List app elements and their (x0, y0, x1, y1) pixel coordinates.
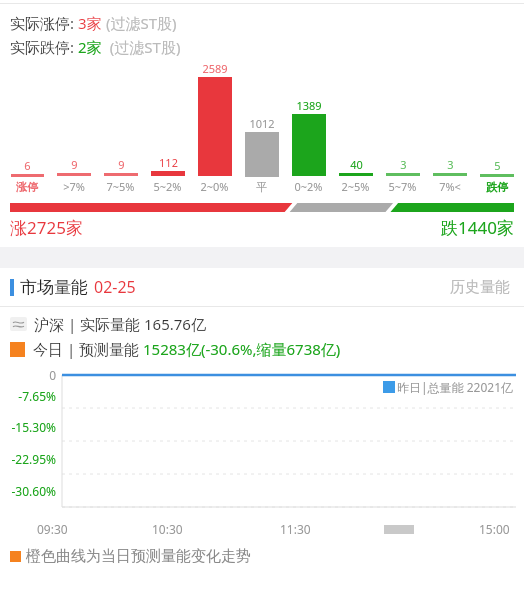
staticText: 40 (350, 157, 363, 172)
button[interactable]: 3 (379, 61, 426, 194)
staticText: 跌停 (486, 180, 508, 194)
button[interactable]: 9 (97, 61, 144, 194)
staticText: 6 (24, 158, 31, 173)
staticText: 跌1440家 (441, 216, 514, 239)
staticText: 3 (400, 157, 407, 172)
staticText: 2~5% (341, 179, 370, 194)
staticText: 02-25 (94, 276, 136, 298)
button[interactable]: 6 (4, 62, 50, 194)
staticText: -15.30% (11, 419, 56, 435)
staticText: -22.95% (11, 451, 56, 467)
staticText: 7%< (439, 179, 461, 194)
staticText: 橙色曲线为当日预测量能变化走势 (26, 547, 251, 566)
staticText: 15283亿(-30.6%,缩量6738亿) (143, 339, 341, 359)
staticText: 2家 (78, 37, 102, 57)
staticText: 5~2% (153, 179, 182, 194)
button[interactable]: 5 (473, 62, 520, 194)
staticText: 今日 | 预测量能 (33, 339, 143, 359)
staticText: (过滤ST股) (102, 37, 181, 57)
button[interactable]: 1012 (238, 62, 285, 194)
button[interactable]: 9 (50, 61, 97, 194)
staticText: -30.60% (11, 483, 56, 499)
button[interactable]: 3 (426, 61, 473, 194)
staticText: 涨2725家 (10, 216, 83, 239)
staticText: 实际跌停: (10, 37, 78, 57)
staticText: 平 (256, 180, 267, 194)
staticText: 0~2% (294, 179, 323, 194)
button[interactable]: 2589 (191, 61, 238, 194)
staticText: 沪深 | 实际量能 (34, 314, 144, 334)
staticText: 3家 (78, 13, 102, 33)
staticText: (过滤ST股) (102, 13, 177, 33)
button[interactable]: 历史量能 (446, 274, 514, 301)
staticText: 10:30 (152, 521, 183, 537)
staticText: 1389 (296, 98, 322, 113)
staticText: 165.76亿 (144, 314, 206, 334)
staticText: 3 (447, 157, 454, 172)
staticText: >7% (63, 179, 85, 194)
staticText: 实际涨停: (10, 13, 78, 33)
staticText: 昨日|总量能 22021亿 (397, 379, 514, 395)
staticText: 5 (494, 158, 501, 173)
staticText: 9 (118, 157, 125, 172)
button[interactable]: 112 (144, 61, 191, 194)
staticText: 11:30 (280, 521, 311, 537)
staticText: 09:30 (37, 521, 68, 537)
staticText: 5~7% (388, 179, 417, 194)
staticText: 涨停 (16, 180, 38, 194)
staticText: 2589 (202, 61, 228, 76)
button[interactable]: 1389 (285, 61, 332, 194)
staticText: 7~5% (106, 179, 135, 194)
staticText: 历史量能 (450, 278, 510, 297)
staticText: 0 (49, 367, 56, 383)
staticText: 市场量能 (20, 277, 88, 298)
staticText: -7.65% (18, 388, 56, 404)
staticText: 112 (159, 155, 178, 170)
staticText: 1012 (249, 116, 275, 131)
staticText: 15:00 (479, 521, 510, 537)
staticText: 2~0% (200, 179, 229, 194)
button[interactable]: 40 (332, 61, 379, 194)
staticText: 9 (71, 157, 78, 172)
